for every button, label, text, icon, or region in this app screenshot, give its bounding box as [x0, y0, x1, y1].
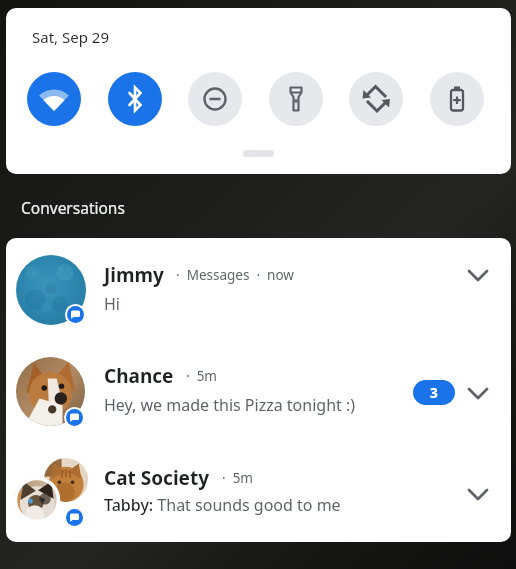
staticText: Tabby: That sounds good to me [104, 494, 341, 516]
staticText: Hey, we made this Pizza tonight :) [104, 394, 356, 416]
button[interactable] [188, 72, 242, 126]
button[interactable] [466, 263, 490, 287]
button[interactable] [269, 72, 323, 126]
staticText: Jimmy [104, 262, 164, 288]
button[interactable] [349, 72, 403, 126]
button[interactable] [27, 72, 81, 126]
staticText: · 5m [222, 469, 253, 487]
staticText: Hi [104, 293, 120, 315]
button[interactable]: Chance [6, 348, 511, 450]
staticText: 3 [430, 384, 438, 402]
button[interactable]: Cat Society [6, 450, 511, 542]
staticText: Sat, Sep 29 [32, 27, 109, 47]
staticText: · 5m [186, 367, 217, 385]
button[interactable] [466, 381, 490, 405]
button[interactable] [430, 72, 484, 126]
staticText: Conversations [21, 197, 125, 218]
staticText: Chance [104, 363, 174, 389]
button[interactable] [108, 72, 162, 126]
button[interactable]: Jimmy [6, 246, 511, 348]
staticText: · Messages · now [176, 266, 294, 284]
button[interactable] [466, 482, 490, 506]
staticText: Cat Society [104, 465, 210, 491]
